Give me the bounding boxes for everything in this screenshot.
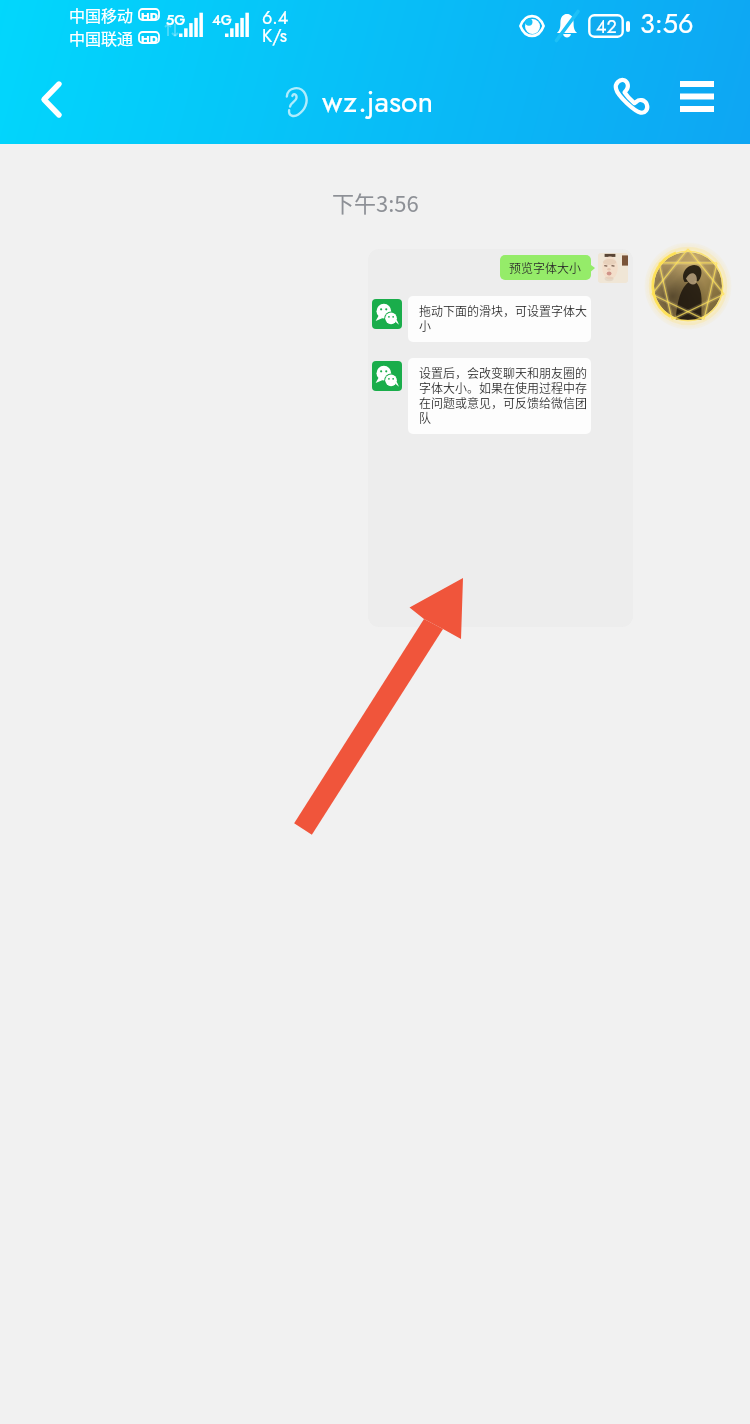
button[interactable]: 预览字体大小: [500, 255, 591, 280]
staticText: wz.jason: [322, 80, 434, 123]
button[interactable]: 设置后，会改变聊天和朋友圈的字体大小。如果在使用过程中存在问题或意见，可反馈给微…: [408, 358, 591, 434]
staticText: 中国联通: [69, 26, 134, 48]
staticText: 设置后，会改变聊天和朋友圈的字体大小。如果在使用过程中存在问题或意见，可反馈给微…: [419, 364, 587, 427]
staticText: 5G: [166, 10, 186, 30]
staticText: HD: [141, 31, 158, 44]
staticText: 下午3:56: [332, 186, 419, 218]
staticText: HD: [141, 8, 158, 21]
button[interactable]: Contact profile photo: [644, 242, 732, 330]
staticText: 6.4: [262, 5, 289, 31]
button[interactable]: 拖动下面的滑块，可设置字体大小: [408, 296, 591, 342]
button[interactable]: WeChat Team profile photo: [372, 361, 402, 391]
button[interactable]: WeChat Team profile photo: [372, 299, 402, 329]
button[interactable]: Back: [15, 63, 87, 135]
staticText: 3:56: [640, 4, 694, 43]
button[interactable]: Call: [597, 62, 665, 130]
staticText: 拖动下面的滑块，可设置字体大小: [419, 302, 587, 335]
button[interactable]: Menu: [661, 60, 733, 132]
staticText: 预览字体大小: [509, 259, 582, 276]
staticText: 42: [596, 14, 617, 38]
staticText: 中国移动: [69, 3, 134, 25]
button[interactable]: Your profile photo: [598, 253, 628, 283]
staticText: 4G: [212, 10, 232, 30]
staticText: K/s: [262, 23, 287, 49]
